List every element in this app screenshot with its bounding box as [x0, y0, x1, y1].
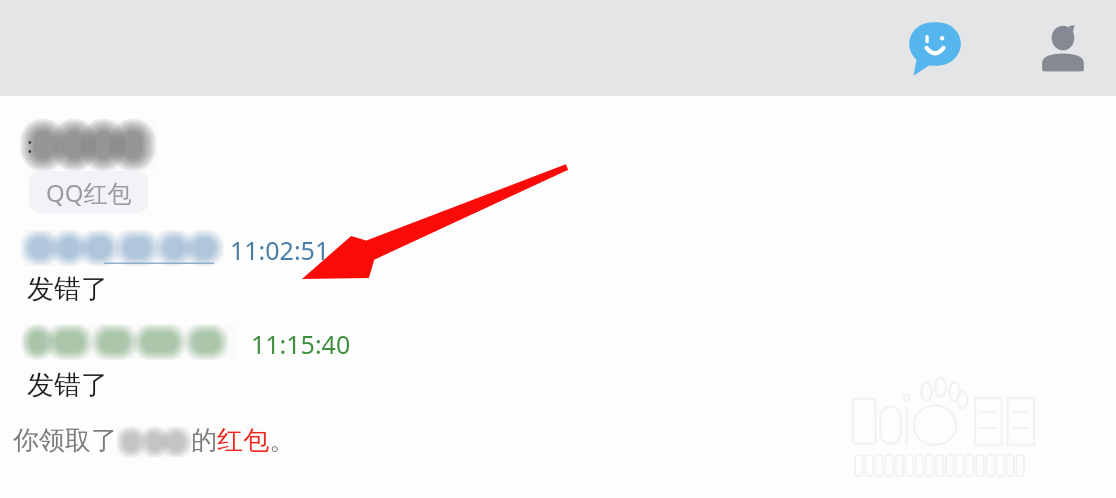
staticText: 发错了 — [27, 272, 108, 306]
staticText: 发错了 — [27, 368, 108, 402]
staticText: 红包 — [217, 424, 269, 457]
button[interactable]: QQ红包 — [29, 171, 148, 213]
staticText: QQ红包 — [46, 176, 132, 209]
button[interactable]: Profile — [1034, 19, 1092, 77]
staticText: 你领取了 — [13, 424, 117, 457]
staticText: : — [27, 131, 33, 160]
staticText: 11:15:40 — [251, 327, 351, 361]
staticText: 的 — [191, 424, 217, 457]
staticText: 。 — [269, 424, 295, 457]
button[interactable]: Emoji chat — [906, 19, 964, 77]
staticText: 11:02:51 — [230, 233, 330, 267]
